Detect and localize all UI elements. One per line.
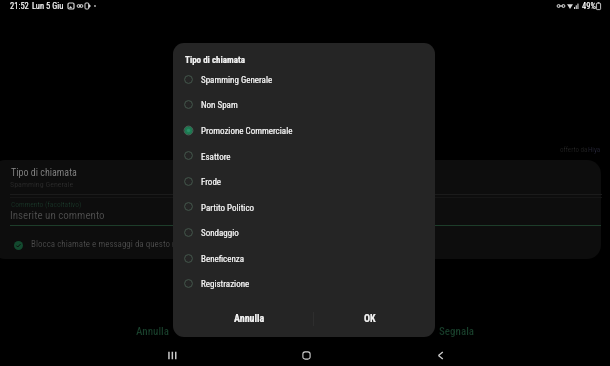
staticText: OK [364,313,376,325]
staticText: Annulla [136,325,169,338]
staticText: Partito Politico [201,203,255,214]
button[interactable]: OK [335,306,405,332]
button[interactable]: Back [420,344,460,366]
staticText: Frode [201,177,222,188]
staticText: Hiya [588,146,601,154]
button[interactable] [173,220,435,337]
button[interactable]: Annulla [214,306,284,332]
staticText: Lun 5 Giu [32,1,64,11]
staticText: Annulla [234,313,265,325]
button[interactable]: Segnala [427,320,487,342]
button[interactable] [173,67,435,337]
staticText: Tipo di chiamata [11,167,77,179]
staticText: Esattore [201,152,231,163]
staticText: Beneficenza [201,254,245,265]
staticText: Commento (facoltativo) [11,200,82,209]
staticText: Spamming Generale [201,75,273,86]
staticText: Promozione Commerciale [201,126,293,137]
staticText: offerto da [560,146,590,154]
button[interactable] [173,245,435,337]
button[interactable] [173,271,435,337]
staticText: 49% [582,1,596,11]
staticText: 21:52 [10,1,29,11]
button[interactable]: Recents [152,344,192,366]
staticText: Registrazione [201,279,250,290]
staticText: Inserite un commento [10,209,105,222]
button[interactable]: Annulla [122,320,182,342]
button[interactable] [173,194,435,337]
staticText: Spamming Generale [10,180,74,189]
button[interactable]: Home [286,344,326,366]
staticText: Segnala [439,325,475,338]
button[interactable] [173,169,435,337]
button[interactable] [173,118,435,337]
button[interactable] [173,143,435,337]
staticText: Sondaggio [201,228,239,239]
staticText: Tipo di chiamata [185,55,245,66]
button[interactable] [173,92,435,337]
staticText: Non Spam [201,100,238,111]
staticText: Blocca chiamate e messaggi da questo num… [31,239,199,250]
